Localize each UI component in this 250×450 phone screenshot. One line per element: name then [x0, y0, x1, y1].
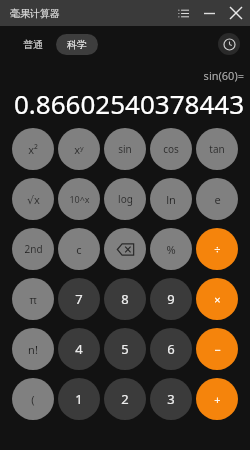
- staticText: 3: [167, 390, 175, 408]
- button[interactable]: 2nd: [12, 228, 54, 270]
- staticText: −: [214, 342, 221, 357]
- staticText: 6: [167, 340, 175, 358]
- staticText: 2: [121, 390, 129, 408]
- staticText: tan: [209, 142, 225, 156]
- button[interactable]: cos: [150, 128, 192, 170]
- button[interactable]: x²: [12, 128, 54, 170]
- button[interactable]: ×: [196, 278, 238, 320]
- staticText: ln: [166, 192, 176, 207]
- staticText: +: [214, 392, 221, 407]
- staticText: 9: [167, 290, 175, 308]
- button[interactable]: n!: [12, 328, 54, 370]
- button[interactable]: 普通: [12, 34, 54, 55]
- button[interactable]: 10^x: [58, 178, 100, 220]
- staticText: 毫果计算器: [10, 7, 60, 20]
- button[interactable]: −: [196, 328, 238, 370]
- staticText: 8: [121, 290, 129, 308]
- button[interactable]: xʸ: [58, 128, 100, 170]
- staticText: x²: [28, 142, 38, 157]
- staticText: cos: [163, 142, 179, 156]
- button[interactable]: √x: [12, 178, 54, 220]
- button[interactable]: 7: [58, 278, 100, 320]
- button[interactable]: %: [150, 228, 192, 270]
- staticText: 10^x: [69, 193, 90, 205]
- button[interactable]: 2: [104, 378, 146, 420]
- button[interactable]: Menu: [170, 0, 196, 26]
- button[interactable]: Backspace: [104, 228, 146, 270]
- button[interactable]: History: [218, 33, 240, 55]
- staticText: e: [214, 192, 221, 207]
- button[interactable]: ln: [150, 178, 192, 220]
- staticText: 2nd: [24, 242, 43, 256]
- button[interactable]: 4: [58, 328, 100, 370]
- button[interactable]: +: [196, 378, 238, 420]
- button[interactable]: π: [12, 278, 54, 320]
- button[interactable]: 3: [150, 378, 192, 420]
- staticText: ÷: [214, 242, 221, 257]
- staticText: 4: [75, 340, 83, 358]
- button[interactable]: 5: [104, 328, 146, 370]
- button[interactable]: tan: [196, 128, 238, 170]
- staticText: 7: [75, 290, 83, 308]
- staticText: 1: [75, 390, 83, 408]
- button[interactable]: 6: [150, 328, 192, 370]
- button[interactable]: sin: [104, 128, 146, 170]
- button[interactable]: 8: [104, 278, 146, 320]
- staticText: log: [118, 192, 133, 206]
- staticText: ×: [214, 292, 221, 307]
- button[interactable]: 科学: [56, 34, 98, 55]
- button[interactable]: (: [12, 378, 54, 420]
- button[interactable]: Close: [222, 0, 250, 26]
- staticText: 5: [121, 340, 129, 358]
- button[interactable]: c: [58, 228, 100, 270]
- button[interactable]: log: [104, 178, 146, 220]
- staticText: 0.866025403784439: [6, 86, 244, 128]
- button[interactable]: Minimize: [196, 0, 222, 26]
- staticText: sin(60)=: [203, 68, 244, 83]
- staticText: xʸ: [74, 142, 84, 157]
- staticText: π: [29, 292, 37, 307]
- staticText: 普通: [23, 38, 43, 51]
- button[interactable]: 9: [150, 278, 192, 320]
- staticText: 科学: [67, 38, 87, 51]
- staticText: (: [31, 392, 35, 407]
- staticText: √x: [27, 192, 40, 207]
- button[interactable]: ÷: [196, 228, 238, 270]
- staticText: c: [76, 242, 82, 257]
- staticText: %: [166, 242, 176, 257]
- staticText: sin: [118, 142, 132, 156]
- button[interactable]: 1: [58, 378, 100, 420]
- button[interactable]: e: [196, 178, 238, 220]
- staticText: n!: [28, 342, 38, 357]
